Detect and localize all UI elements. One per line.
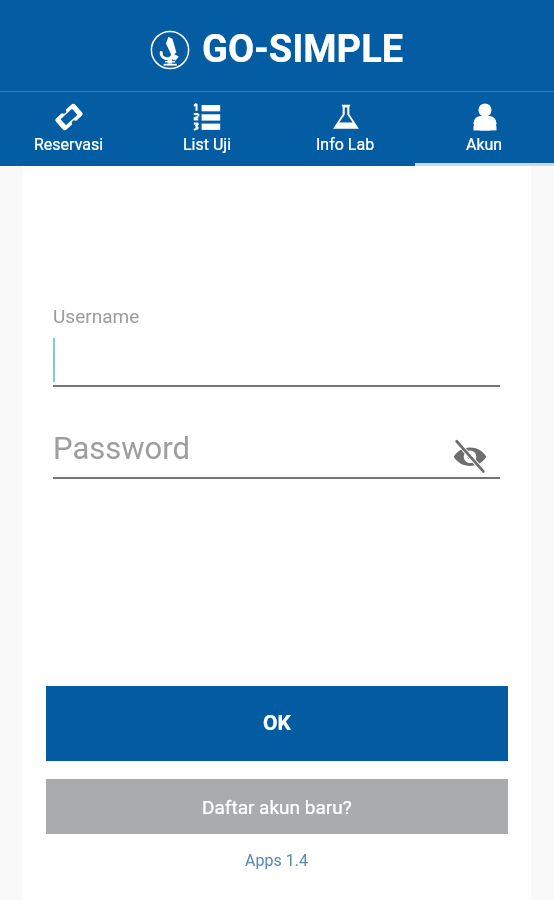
staticText: Info Lab: [316, 135, 375, 154]
button[interactable]: OK: [46, 686, 508, 761]
button[interactable]: Apps 1.4: [22, 851, 531, 870]
button[interactable]: Username: [53, 302, 500, 387]
button[interactable]: Info Lab: [276, 92, 415, 166]
staticText: Daftar akun baru?: [202, 796, 352, 818]
staticText: GO-SIMPLE: [202, 27, 404, 72]
staticText: Username: [53, 305, 140, 327]
button[interactable]: List Uji: [138, 92, 276, 166]
button[interactable]: Akun: [415, 92, 554, 166]
button[interactable]: Daftar akun baru?: [46, 779, 508, 834]
staticText: List Uji: [183, 135, 232, 154]
button[interactable]: Password: [53, 428, 500, 479]
staticText: OK: [263, 711, 291, 736]
staticText: Reservasi: [34, 135, 104, 154]
staticText: Password: [53, 430, 190, 466]
button[interactable]: Reservasi: [0, 92, 138, 166]
staticText: Akun: [466, 135, 503, 154]
button[interactable]: Show password: [450, 436, 490, 476]
